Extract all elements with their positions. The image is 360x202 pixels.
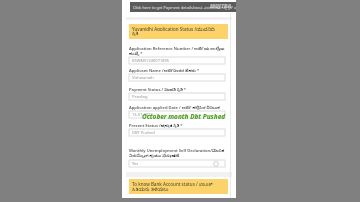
staticText: To know Bank Account status / ಬ್ಯಾಂಕ್ ಖಾ… [132,181,225,186]
button[interactable]: Click here to get Payment details/ಪಾವತಿ … [130,2,236,12]
button[interactable]: Pending [129,93,225,100]
button[interactable]: Yes [129,160,225,167]
staticText: Yes [132,161,139,166]
staticText: Yuvanidhi Application Status /ಯುವನಿಧಿ ಅರ… [132,26,225,31]
staticText: ಸ್ಥಿತಿ [132,31,139,36]
button[interactable]: DBT Pushed [129,129,225,136]
staticText: Vishwanath [132,75,154,80]
staticText: Applicant Name /ಅರ್ಜಿದಾರರ ಹೆಸರು * [129,68,200,73]
button[interactable]: KSWMS1240071895 [129,57,225,64]
staticText: Present Status /ಪ್ರಸ್ತುತ ಸ್ಥಿತಿ * [129,123,183,128]
staticText: Monthly Unemployment Self Declaration/ಮಾ… [129,148,225,153]
staticText: DBT Pushed [132,130,155,135]
staticText: ಸಂಖ್ಯೆ * [129,51,143,56]
staticText: Application Reference Number / ಅರ್ಜಿಯ ಉಲ… [129,46,225,51]
button[interactable]: Vishwanath [129,74,225,81]
staticText: Pending [132,94,148,99]
staticText: ನಿರುದ್ಯೋಗ ಸ್ವಯಂ ಘೋಷಣೆ [129,153,179,158]
staticText: Click here to get Payment details/ಪಾವತಿ … [133,5,236,10]
staticText: MUJTBA [210,2,232,9]
staticText: October month Dbt Pushed [142,112,226,121]
button[interactable]: To know Bank Account status / ಬ್ಯಾಂಕ್ ಖಾ… [129,179,228,194]
staticText: KSWMS1240071895 [132,58,170,63]
staticText: Application applied Date / ಅರ್ಜಿ ಸಲ್ಲಿಸಿ… [129,105,220,110]
staticText: Payment Status / ಪಾವತಿ ಸ್ಥಿತಿ * [129,87,187,92]
staticText: ಸ್ಥಿತಿಯನ್ನು ತಿಳಿಯಲು [132,186,169,191]
button[interactable]: 13-01-2024 [129,111,225,118]
staticText: 13-01-2024 [132,112,153,117]
button[interactable]: Yuvanidhi Application Status /ಯುವನಿಧಿ ಅರ… [129,24,228,39]
